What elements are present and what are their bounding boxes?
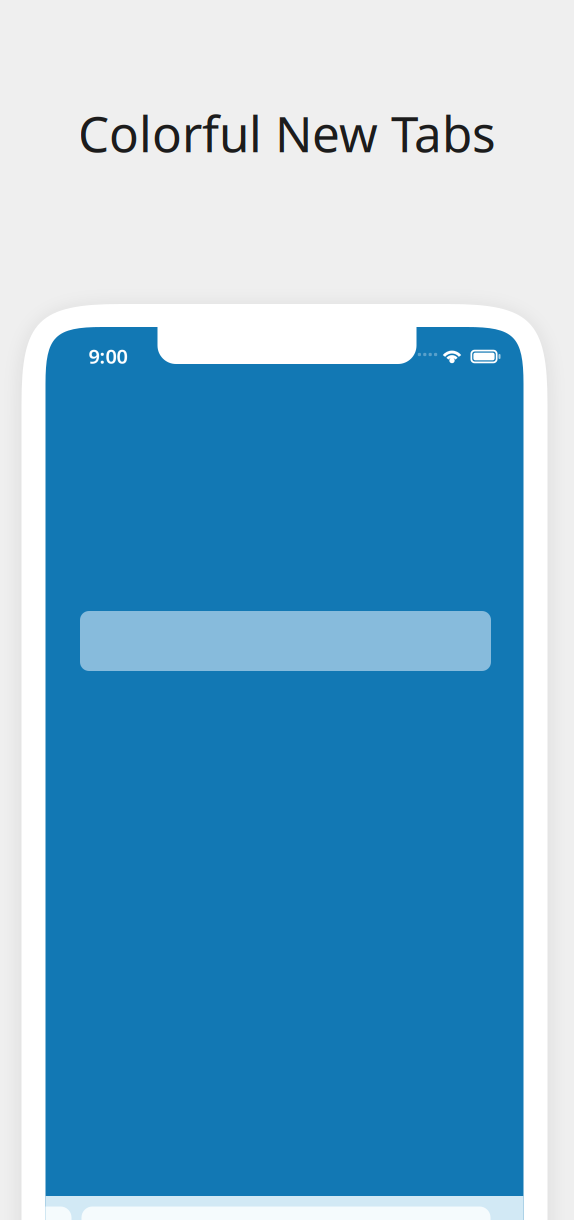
button[interactable]: Search or enter website name (80, 611, 491, 671)
staticText: Colorful New Tabs (78, 100, 496, 166)
staticText: 9:00 (88, 343, 127, 369)
button[interactable]: Previous tab (45, 1206, 71, 1220)
button[interactable]: Current tab (81, 1206, 490, 1220)
